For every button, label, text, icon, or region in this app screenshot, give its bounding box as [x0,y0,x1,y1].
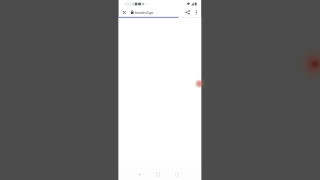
button[interactable]: Recent apps [168,167,187,180]
button[interactable]: Share [183,8,192,17]
button[interactable]: Home [149,167,168,180]
button[interactable]: More options [192,8,200,17]
staticText: 10:24 [125,1,134,7]
button[interactable]: Close [120,8,129,17]
button[interactable]: bundesliga [129,8,153,17]
staticText: bundesliga [135,10,153,15]
